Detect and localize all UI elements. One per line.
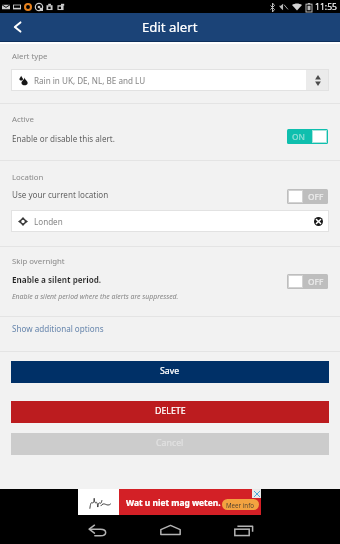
staticText: Alert type [12, 51, 48, 62]
button[interactable]: Advertiser logo [78, 489, 119, 515]
button[interactable]: Select alert type [306, 69, 329, 91]
staticText: Enable a silent period where the alerts … [12, 292, 179, 301]
staticText: Cancel [156, 437, 184, 449]
staticText: Use your current location [12, 189, 109, 200]
staticText: Edit alert [142, 18, 198, 36]
staticText: Show additional options [12, 323, 104, 334]
staticText: OFF [308, 276, 324, 287]
button[interactable]: Back [0, 13, 34, 41]
button[interactable]: Londen [11, 210, 329, 232]
button[interactable]: Show additional options [0, 317, 340, 351]
staticText: 11:55 [315, 1, 337, 13]
button[interactable]: Home [145, 516, 195, 544]
button[interactable]: Save [11, 361, 329, 383]
staticText: Meer info [226, 501, 255, 509]
staticText: Londen [34, 216, 63, 227]
staticText: ON [292, 131, 305, 142]
button[interactable]: Rain in UK, DE, NL, BE and LU [11, 69, 329, 91]
staticText: Active [12, 114, 34, 125]
staticText: Enable or disable this alert. [12, 133, 115, 144]
staticText: Enable a silent period. [12, 274, 102, 285]
button[interactable]: Recent apps [219, 516, 269, 544]
staticText: Location [12, 172, 44, 183]
staticText: Save [160, 365, 180, 377]
staticText: DELETE [155, 405, 186, 417]
button[interactable]: Toggle on [287, 129, 328, 144]
button[interactable]: Toggle off [287, 189, 328, 204]
button[interactable]: Wat u niet mag weten. [119, 489, 261, 515]
button[interactable]: Meer info [222, 499, 259, 510]
staticText: OFF [308, 191, 324, 202]
button[interactable]: DELETE [11, 401, 329, 423]
staticText: Rain in UK, DE, NL, BE and LU [34, 75, 146, 86]
button[interactable]: Toggle off [287, 274, 328, 289]
staticText: Skip overnight [12, 256, 65, 267]
button[interactable]: Close ad [252, 489, 261, 498]
button[interactable]: Back [72, 516, 122, 544]
staticText: Wat u niet mag weten. [126, 497, 221, 508]
button[interactable]: Clear location [308, 211, 328, 231]
